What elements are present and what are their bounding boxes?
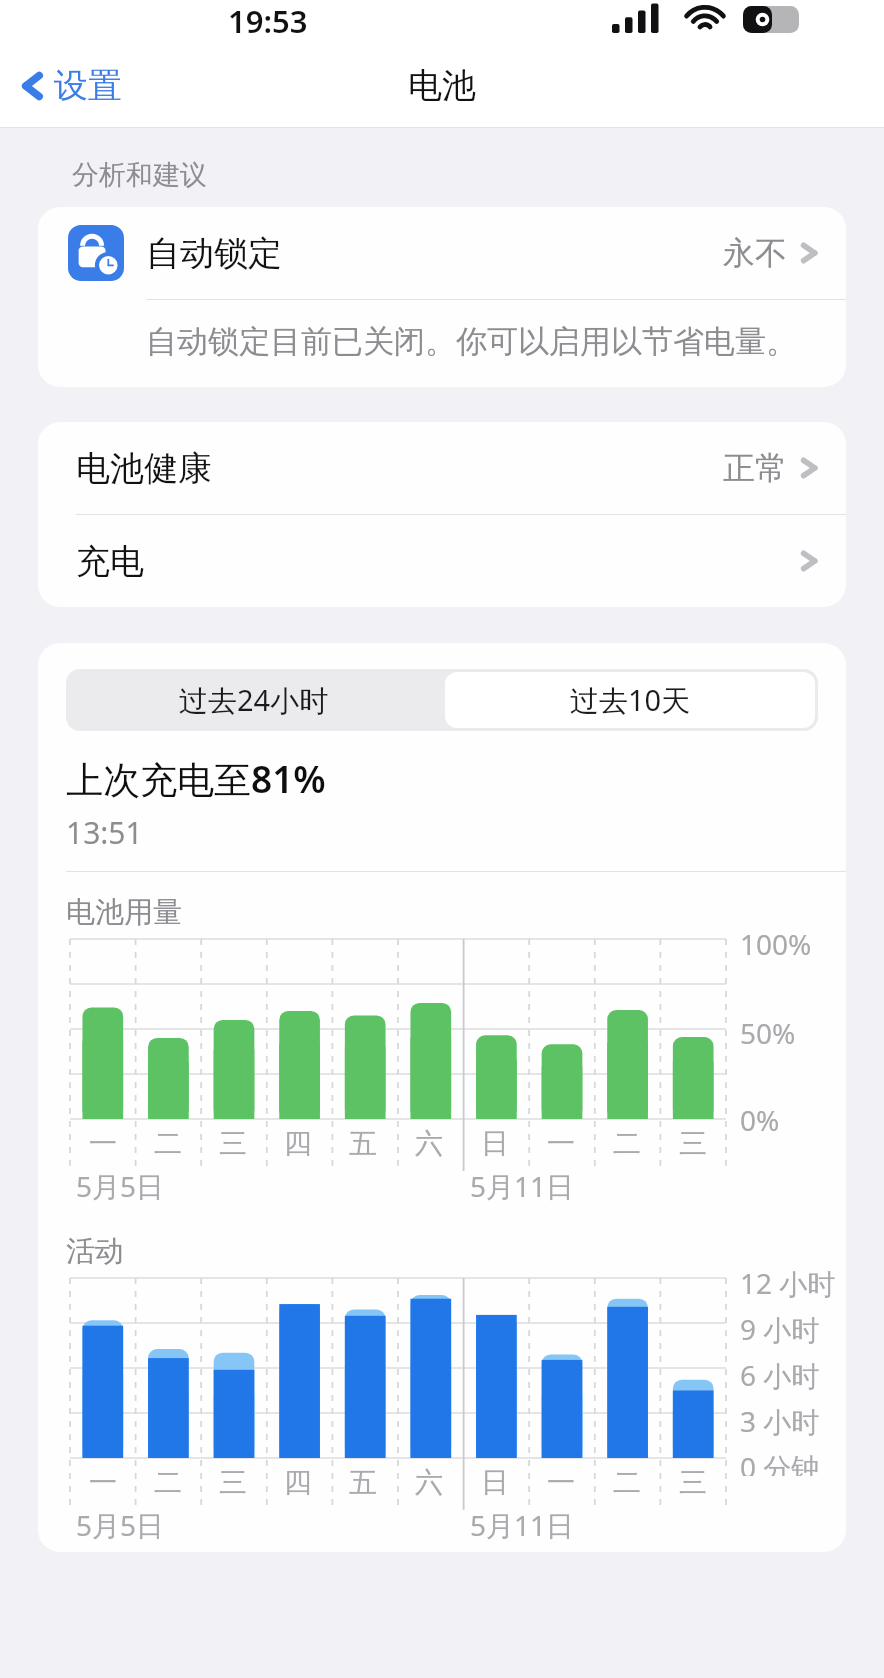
- staticText: 上次充电至81%: [66, 753, 326, 804]
- staticText: 电池健康: [76, 447, 212, 490]
- staticText: 日: [481, 1126, 509, 1161]
- staticText: 电池用量: [66, 894, 182, 931]
- staticText: 充电: [76, 540, 144, 583]
- staticText: 分析和建议: [72, 158, 207, 192]
- staticText: 永不: [723, 233, 787, 273]
- staticText: 一: [89, 1465, 117, 1500]
- staticText: 9 小时: [740, 1310, 820, 1348]
- staticText: 四: [284, 1465, 312, 1500]
- staticText: 13:51: [66, 812, 143, 853]
- button[interactable]: 过去10天: [445, 672, 815, 728]
- button[interactable]: Auto-Lock: [38, 207, 846, 299]
- staticText: 三: [679, 1465, 707, 1500]
- staticText: 50%: [740, 1014, 796, 1052]
- staticText: 二: [613, 1465, 641, 1500]
- staticText: 日: [481, 1465, 509, 1500]
- staticText: 一: [547, 1126, 575, 1161]
- button[interactable]: 充电: [38, 515, 846, 607]
- staticText: 四: [284, 1126, 312, 1161]
- staticText: 活动: [66, 1233, 124, 1270]
- staticText: 过去24小时: [179, 680, 329, 720]
- staticText: 19:53: [228, 0, 308, 42]
- staticText: 3 小时: [740, 1402, 820, 1440]
- staticText: 三: [219, 1126, 247, 1161]
- staticText: 电池: [408, 64, 476, 107]
- staticText: 5月11日: [470, 1506, 575, 1544]
- staticText: 100%: [740, 925, 812, 963]
- staticText: 五: [349, 1126, 377, 1161]
- button[interactable]: 过去24小时: [66, 669, 442, 731]
- staticText: 六: [415, 1126, 443, 1161]
- staticText: 设置: [54, 64, 122, 107]
- staticText: 五: [349, 1465, 377, 1500]
- other: Auto-Lock: [68, 225, 124, 281]
- staticText: 二: [154, 1126, 182, 1161]
- staticText: 6 小时: [740, 1356, 820, 1394]
- button[interactable]: 电池健康: [38, 422, 846, 514]
- staticText: 5月5日: [76, 1167, 165, 1205]
- staticText: 5月11日: [470, 1167, 575, 1205]
- staticText: 一: [89, 1126, 117, 1161]
- staticText: 六: [415, 1465, 443, 1500]
- staticText: 过去10天: [570, 680, 691, 720]
- staticText: 自动锁定目前已关闭。你可以启用以节省电量。: [146, 322, 797, 361]
- staticText: 二: [613, 1126, 641, 1161]
- staticText: 正常: [723, 448, 787, 488]
- staticText: 二: [154, 1465, 182, 1500]
- staticText: 三: [219, 1465, 247, 1500]
- button[interactable]: 设置: [0, 54, 138, 117]
- staticText: 自动锁定: [146, 232, 282, 275]
- staticText: 一: [547, 1465, 575, 1500]
- staticText: 0%: [740, 1101, 780, 1139]
- staticText: 5月5日: [76, 1506, 165, 1544]
- staticText: 12 小时: [740, 1264, 836, 1302]
- staticText: 三: [679, 1126, 707, 1161]
- staticText: 0 分钟: [740, 1448, 820, 1476]
